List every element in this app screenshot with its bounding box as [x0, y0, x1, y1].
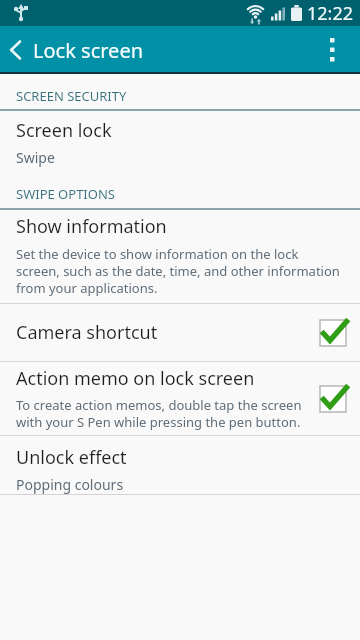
staticText: Screen lock [16, 118, 112, 143]
button[interactable] [312, 26, 352, 74]
staticText: Camera shortcut [16, 320, 158, 345]
staticText: Swipe [16, 148, 55, 167]
button[interactable]: Camera shortcut [0, 304, 360, 361]
button[interactable]: Screen lock [0, 111, 360, 172]
staticText: To create action memos, double tap the s… [16, 396, 302, 431]
staticText: Show information [16, 214, 167, 239]
button[interactable]: Lock screen [0, 26, 360, 74]
staticText: Action memo on lock screen [16, 366, 255, 391]
button[interactable]: Show information [0, 210, 360, 303]
staticText: Unlock effect [16, 445, 127, 470]
button[interactable]: Action memo on lock screen [0, 362, 360, 435]
staticText: SCREEN SECURITY [16, 87, 127, 105]
staticText: Popping colours [16, 475, 124, 494]
staticText: Lock screen [33, 37, 144, 64]
button[interactable]: Unlock effect [0, 436, 360, 494]
staticText: Set the device to show information on th… [16, 245, 340, 297]
staticText: SWIPE OPTIONS [16, 185, 115, 203]
staticText: 12:22 [307, 1, 354, 26]
